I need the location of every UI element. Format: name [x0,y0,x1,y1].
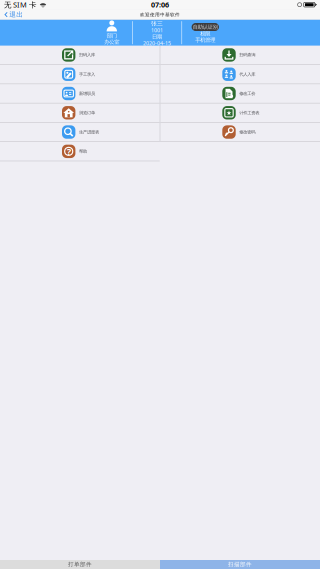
button[interactable]: ? [0,142,160,161]
button[interactable]: 生产进度表 [0,123,160,142]
staticText: 扫描部件 [228,561,252,568]
staticText: 手工录入 [79,71,95,77]
staticText: 生产进度表 [79,129,99,135]
staticText: 修改工价 [239,91,255,96]
staticText: 手机管理 [195,36,215,43]
staticText: 帮助 [79,149,87,154]
button[interactable]: 新增职员 [0,84,160,103]
button[interactable]: 浏览订单 [0,103,160,123]
staticText: 修改密码 [239,129,255,135]
staticText: 扫码查询 [239,52,255,58]
button[interactable]: 自助认证别 [192,23,219,31]
button[interactable]: 计件工资表 [160,103,320,123]
staticText: 办公室 [104,39,119,45]
button[interactable]: 修改密码 [160,123,320,142]
staticText: 张三 [151,20,163,27]
staticText: 07:06 [151,0,169,10]
staticText: 打单部件 [68,561,92,568]
staticText: 日期 [152,33,162,40]
staticText: 代人入库 [239,71,255,77]
button[interactable]: 扫描部件 [160,560,320,569]
button[interactable]: 代人入库 [160,65,320,84]
staticText: 无 SIM 卡 [4,0,36,10]
button[interactable]: 扫码查询 [160,46,320,65]
staticText: 欢迎使用中基软件 [140,12,180,18]
staticText: 1001 [151,27,163,34]
staticText: ? [67,145,71,158]
button[interactable]: 扫码入库 [0,46,160,65]
button[interactable]: 打单部件 [0,560,160,569]
button[interactable]: 修改工价 [160,84,320,103]
staticText: 计件工资表 [239,110,259,115]
staticText: 权限 [200,30,210,37]
staticText: 自助认证别 [193,24,218,30]
staticText: 部门 [107,32,117,39]
button[interactable]: 手工录入 [0,65,160,84]
staticText: 退出 [9,10,23,19]
staticText: 新增职员 [79,91,95,96]
staticText: 2020-04-15 [143,39,171,47]
staticText: 扫码入库 [79,52,95,58]
button[interactable]: 退出 [0,9,28,20]
staticText: 浏览订单 [79,110,95,115]
